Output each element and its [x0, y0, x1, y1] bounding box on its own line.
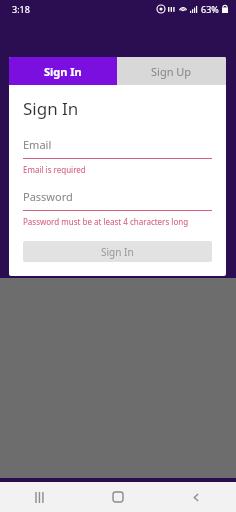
staticText: Sign In: [23, 97, 79, 120]
staticText: Password: [23, 189, 73, 204]
button[interactable]: Password: [23, 186, 212, 206]
staticText: Password must be at least 4 characters l…: [23, 216, 189, 227]
button[interactable]: Recent apps: [0, 482, 78, 512]
button[interactable]: Sign In: [9, 57, 117, 85]
staticText: Email: [23, 137, 52, 152]
button[interactable]: Sign Up: [117, 57, 226, 85]
staticText: Sign In: [101, 245, 134, 259]
button[interactable]: Sign In: [23, 241, 212, 262]
button[interactable]: Email: [23, 134, 212, 154]
button[interactable]: Back: [157, 482, 236, 512]
staticText: 3:18: [12, 3, 30, 15]
staticText: 63%: [201, 3, 219, 15]
button[interactable]: Home: [78, 482, 157, 512]
staticText: Sign Up: [151, 64, 192, 79]
staticText: Sign In: [44, 64, 82, 79]
staticText: Email is required: [23, 164, 86, 175]
